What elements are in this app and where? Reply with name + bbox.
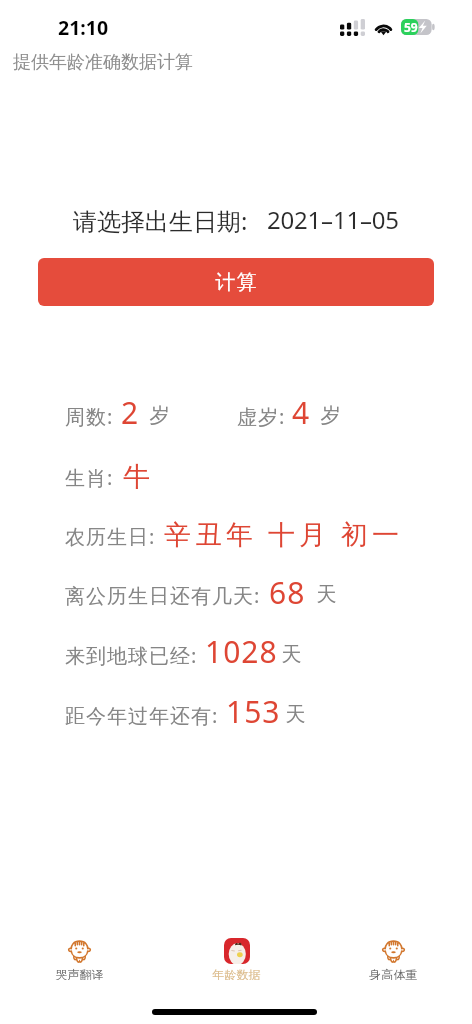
staticText: 天 (316, 582, 337, 607)
button[interactable]: 哭声翻译 (0, 918, 158, 980)
staticText: 离公历生日还有几天: (65, 582, 261, 609)
staticText: 1028 (205, 631, 278, 672)
staticText: 153 (226, 691, 281, 732)
staticText: 68 (269, 572, 306, 613)
staticText: 农历生日: (65, 523, 156, 550)
staticText: 岁 (149, 403, 170, 428)
button[interactable]: 请选择出生日期: (73, 199, 398, 237)
button[interactable]: 身高体重 (315, 918, 472, 980)
staticText: 来到地球已经: (65, 642, 198, 669)
staticText: 岁 (320, 403, 341, 428)
staticText: 距今年过年还有: (65, 702, 219, 729)
staticText: 21:10 (58, 14, 109, 41)
button[interactable]: 年龄数据 (158, 918, 315, 980)
staticText: 计算 (215, 270, 257, 295)
staticText: 辛丑年 十月 初一 (164, 515, 404, 552)
staticText: 天 (281, 642, 302, 667)
staticText: 提供年龄准确数据计算 (13, 51, 193, 74)
button[interactable]: 计算 (38, 258, 434, 306)
staticText: 哭声翻译 (55, 967, 104, 980)
staticText: 年龄数据 (212, 967, 261, 980)
staticText: 天 (285, 702, 306, 727)
staticText: 生肖: (65, 464, 114, 491)
staticText: 2 (121, 392, 140, 433)
staticText: 周数: (65, 403, 114, 430)
staticText: 4 (292, 392, 311, 433)
staticText: 身高体重 (369, 967, 418, 980)
staticText: 请选择出生日期: (73, 204, 248, 237)
staticText: 59 (404, 19, 418, 35)
staticText: 虚岁: (237, 403, 286, 430)
staticText: 牛 (121, 460, 152, 494)
staticText: 2021–11–05 (267, 203, 399, 236)
